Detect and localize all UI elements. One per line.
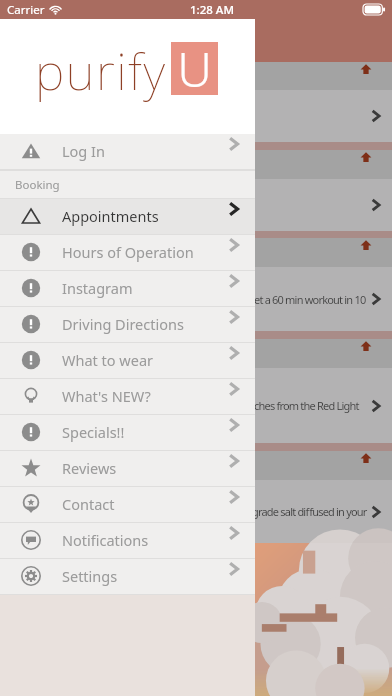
staticText: Settings bbox=[62, 566, 118, 586]
button[interactable]: ches from the Red Light bbox=[0, 368, 392, 443]
button[interactable]: Settings bbox=[0, 559, 255, 595]
other: Collapse bbox=[360, 239, 372, 251]
staticText: grade salt diffused in your bbox=[252, 504, 367, 519]
staticText: purify bbox=[35, 37, 167, 105]
button[interactable]: Log In bbox=[0, 134, 255, 170]
staticText: Driving Directions bbox=[62, 314, 184, 334]
button[interactable]: Collapse bbox=[0, 238, 392, 267]
staticText: Contact bbox=[62, 494, 115, 514]
staticText: What's NEW? bbox=[62, 386, 151, 406]
staticText: U bbox=[171, 36, 218, 101]
button[interactable]: Driving Directions bbox=[0, 307, 255, 343]
button[interactable]: Collapse bbox=[0, 451, 392, 480]
staticText: et a 60 min workout in 10 bbox=[254, 292, 366, 307]
button[interactable] bbox=[0, 179, 392, 231]
staticText: What to wear bbox=[62, 350, 154, 370]
button[interactable]: Collapse bbox=[0, 62, 392, 90]
staticText: Notifications bbox=[62, 530, 149, 550]
staticText: Instagram bbox=[62, 278, 133, 298]
staticText: Log In bbox=[62, 141, 105, 161]
staticText: ches from the Red Light bbox=[254, 398, 359, 413]
button[interactable]: Contact bbox=[0, 487, 255, 523]
button[interactable]: Hours of Operation bbox=[0, 235, 255, 271]
button[interactable]: grade salt diffused in your bbox=[0, 480, 392, 543]
staticText: Specials!! bbox=[62, 422, 125, 442]
staticText: Appointments bbox=[62, 206, 159, 226]
staticText: Hours of Operation bbox=[62, 242, 194, 262]
staticText: 1:28 AM bbox=[190, 2, 234, 18]
button[interactable]: Instagram bbox=[0, 271, 255, 307]
other: Collapse bbox=[360, 63, 372, 75]
button[interactable]: Specials!! bbox=[0, 415, 255, 451]
staticText: Carrier bbox=[7, 2, 45, 18]
button[interactable]: et a 60 min workout in 10 bbox=[0, 267, 392, 331]
button[interactable]: What to wear bbox=[0, 343, 255, 379]
other: Collapse bbox=[360, 151, 372, 163]
staticText: Reviews bbox=[62, 458, 117, 478]
button[interactable]: Notifications bbox=[0, 523, 255, 559]
button[interactable]: Appointments bbox=[0, 199, 255, 235]
button[interactable]: Collapse bbox=[0, 339, 392, 368]
button[interactable]: What's NEW? bbox=[0, 379, 255, 415]
button[interactable]: Reviews bbox=[0, 451, 255, 487]
other: Collapse bbox=[360, 452, 372, 464]
staticText: Booking bbox=[15, 177, 60, 193]
other: Collapse bbox=[360, 340, 372, 352]
button[interactable] bbox=[0, 90, 392, 142]
button[interactable]: Collapse bbox=[0, 150, 392, 179]
